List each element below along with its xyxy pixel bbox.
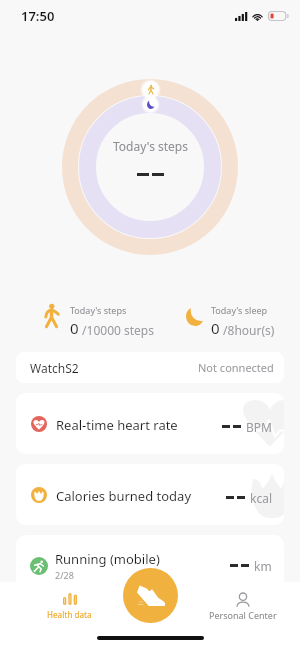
staticText: BPM (246, 419, 272, 435)
button[interactable]: Real-time heart rate (16, 393, 284, 454)
staticText: kcal (250, 490, 272, 506)
staticText: 17:50 (21, 7, 55, 25)
staticText: /10000 steps (79, 322, 155, 338)
staticText: Today's sleep (211, 304, 268, 316)
staticText: Today's steps (113, 138, 188, 154)
staticText: /8hour(s) (220, 322, 275, 338)
staticText: 0 (211, 318, 220, 338)
staticText: Real-time heart rate (56, 416, 178, 434)
staticText: Not connected (198, 360, 274, 375)
button[interactable]: Start workout (123, 568, 178, 623)
button[interactable]: Calories burned today (16, 464, 284, 525)
staticText: Today's steps (70, 304, 127, 316)
staticText: Calories burned today (56, 487, 192, 505)
button[interactable]: Running (mobile) (16, 535, 284, 596)
staticText: 2/28 (55, 569, 74, 581)
button[interactable]: Health data (39, 590, 100, 623)
staticText: Health data (47, 609, 92, 620)
staticText: WatchS2 (30, 360, 79, 376)
staticText: 0 (70, 318, 79, 338)
button[interactable]: Personal Center (201, 590, 285, 624)
staticText: Running (mobile) (55, 550, 160, 568)
button[interactable]: WatchS2 (16, 352, 284, 383)
staticText: Personal Center (209, 609, 277, 621)
staticText: km (254, 558, 272, 574)
